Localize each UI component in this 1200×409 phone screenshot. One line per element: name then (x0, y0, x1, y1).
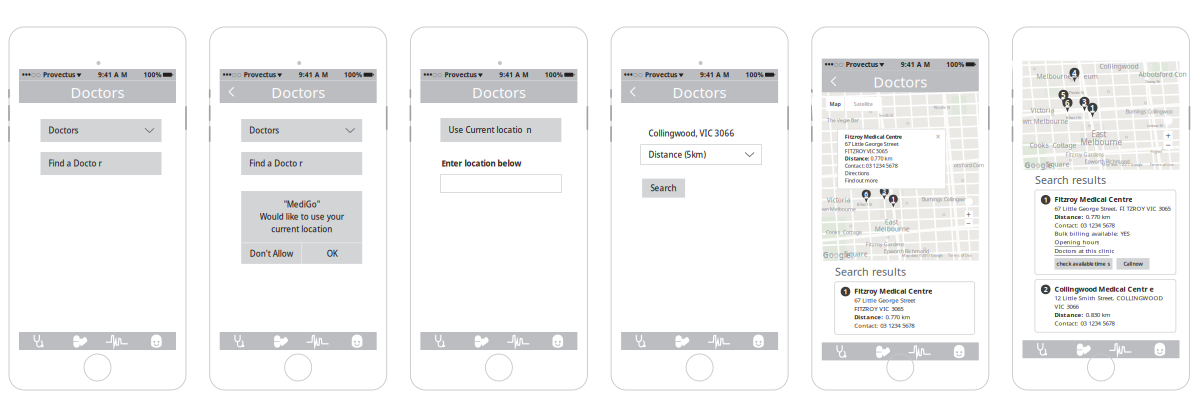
button[interactable]: Find a Docto r (40, 152, 161, 175)
staticText: Distance (5km) (649, 149, 706, 160)
staticText: Thistle St (1068, 90, 1083, 95)
staticText: Call now (1123, 260, 1142, 267)
staticText: 67 Little George Street (845, 140, 899, 147)
button[interactable]: Doctors (220, 332, 259, 350)
button[interactable]: Profile (538, 332, 577, 350)
button[interactable]: Back (827, 70, 841, 93)
button[interactable]: Vitals (1101, 340, 1140, 358)
button[interactable]: Doctors (621, 332, 660, 350)
button[interactable]: Zoom out (965, 219, 973, 227)
staticText: Collingwood, VIC 3066 (649, 128, 735, 139)
staticText: 5 (1061, 89, 1066, 100)
staticText: Cooks Cottage (826, 229, 862, 236)
staticText: Melbourne (1080, 137, 1122, 147)
staticText: 3 (1082, 96, 1087, 107)
button[interactable]: Medication (460, 332, 499, 350)
staticText: Enter location below (441, 158, 521, 169)
button[interactable]: Back (626, 80, 640, 103)
button[interactable]: Use Current locatio n (440, 118, 561, 142)
button[interactable]: Close (934, 132, 943, 141)
button[interactable]: Medication (861, 342, 900, 360)
button[interactable]: Find a Docto r (241, 152, 362, 175)
button[interactable]: Vitals (298, 332, 337, 350)
staticText: Fitzroy Medical Centre (845, 133, 902, 140)
staticText: e (1047, 160, 1052, 170)
staticText: ••• (223, 70, 232, 79)
button[interactable]: check available time s (1054, 258, 1112, 270)
button[interactable]: Vitals (499, 332, 538, 350)
staticText: Provectus (41, 70, 75, 79)
staticText: Albert St (857, 202, 872, 207)
staticText: Opening hours (1054, 238, 1099, 246)
button[interactable]: Profile (939, 342, 979, 360)
button[interactable]: Search (642, 179, 685, 198)
staticText: Search (651, 183, 677, 193)
staticText: o (1030, 160, 1035, 170)
staticText: ••• (825, 60, 834, 69)
button[interactable]: Directions (845, 169, 870, 177)
button[interactable]: Don't Allow (241, 243, 301, 264)
staticText: Map data ©2017 Google (1101, 162, 1142, 167)
staticText: Provectus (442, 70, 476, 79)
staticText: Doctors at this clinic (1054, 247, 1116, 255)
staticText: Abbotsford Con (1138, 70, 1186, 79)
staticText: Distance: (1054, 311, 1083, 319)
staticText: 0.770 km (870, 155, 892, 162)
staticText: ○○ (232, 72, 242, 78)
staticText: Fitzroy Gardens (866, 241, 905, 248)
staticText: 1 (1044, 195, 1048, 204)
button[interactable]: Profile (739, 332, 778, 350)
button[interactable]: Doctors (241, 119, 362, 142)
button[interactable]: Doctors at this clinic (1054, 247, 1116, 255)
staticText: Melbourne M eum (1036, 72, 1097, 81)
staticText: Doctors (472, 82, 526, 102)
staticText: Epworth Richmond (884, 248, 929, 255)
staticText: Distance: (845, 155, 869, 162)
button[interactable]: Zoom out (1163, 140, 1172, 149)
button[interactable]: Zoom in (965, 211, 973, 219)
staticText: VIC 3066 (1054, 302, 1078, 310)
button[interactable]: Distance (5km) (641, 145, 762, 165)
button[interactable]: Vitals (700, 332, 739, 350)
button[interactable]: Call now (1116, 258, 1149, 270)
button[interactable]: Find out more (845, 177, 878, 184)
button[interactable]: Doctors (1022, 340, 1062, 358)
staticText: Highst (1150, 149, 1161, 154)
staticText: ○○ (834, 61, 844, 67)
staticText: Burnings Collingwoo (1125, 108, 1172, 115)
button[interactable]: Medication (1062, 340, 1101, 358)
button[interactable]: Satellite (845, 97, 882, 111)
staticText: check available time s (1056, 260, 1110, 267)
staticText: e (846, 250, 851, 260)
staticText: Provectus (242, 70, 276, 79)
button[interactable]: Vitals (97, 332, 137, 350)
staticText: Fitzroy Gardens (1065, 151, 1104, 158)
button[interactable]: Doctors (822, 342, 861, 360)
staticText: The Vegie Bar (827, 117, 859, 124)
button[interactable]: Doctors (420, 332, 460, 350)
staticText: g (839, 250, 844, 260)
button[interactable]: Profile (1140, 340, 1179, 358)
staticText: 100% (946, 60, 964, 69)
staticText: Otway St (1144, 79, 1159, 84)
staticText: ••• (423, 70, 432, 79)
button[interactable]: OK (302, 243, 362, 264)
button[interactable]: Profile (137, 332, 176, 350)
button[interactable]: Profile (337, 332, 377, 350)
staticText: OK (327, 248, 338, 259)
button[interactable]: Vitals (900, 342, 939, 360)
staticText: Provectus (643, 70, 677, 79)
button[interactable]: Medication (58, 332, 97, 350)
button[interactable]: Medication (259, 332, 298, 350)
button[interactable]: Doctors (19, 332, 58, 350)
staticText: Distance: (1054, 213, 1083, 221)
button[interactable]: Opening hours (1054, 238, 1099, 246)
button[interactable]: Zoom in (1163, 131, 1172, 140)
button[interactable]: Map (826, 97, 844, 111)
button[interactable]: Doctors (40, 119, 161, 142)
button[interactable]: Back (225, 80, 239, 103)
button[interactable]: Medication (660, 332, 699, 350)
staticText: ••• (624, 70, 633, 79)
staticText: Satellite (854, 100, 873, 108)
staticText: 4 (1072, 67, 1077, 78)
